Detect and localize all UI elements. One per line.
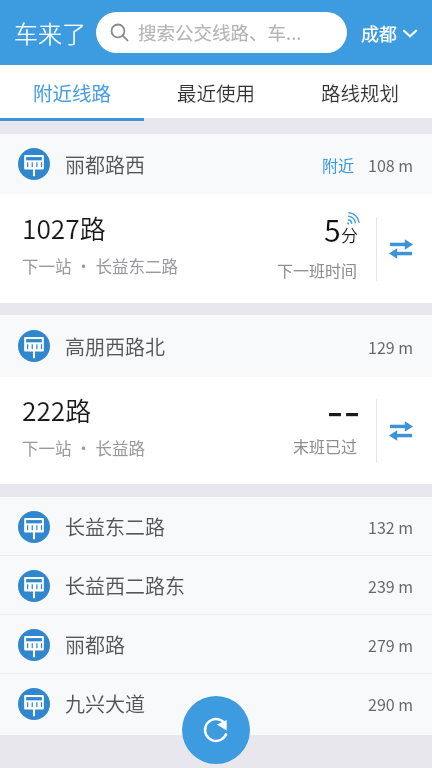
staticText: 222路: [22, 391, 92, 429]
button[interactable]: 九兴大道: [0, 674, 432, 733]
button[interactable]: 长益西二路东: [0, 556, 432, 615]
staticText: 丽都路: [65, 630, 125, 659]
staticText: 附近: [322, 153, 355, 176]
staticText: 车来了: [14, 15, 86, 50]
button[interactable]: 222路: [0, 377, 432, 484]
button[interactable]: 1027路: [0, 194, 432, 303]
button[interactable]: 搜索公交线路、车...: [96, 12, 347, 53]
staticText: 分: [341, 222, 358, 247]
button[interactable]: 高朋西路北: [0, 315, 432, 377]
staticText: 132 m: [368, 515, 414, 538]
button[interactable]: Switch direction: [386, 416, 416, 446]
staticText: 1027路: [22, 209, 106, 247]
staticText: 长益西二路东: [65, 571, 185, 600]
button[interactable]: 丽都路西: [0, 134, 432, 194]
button[interactable]: 成都: [361, 20, 418, 46]
button[interactable]: 最近使用: [144, 65, 288, 118]
button[interactable]: 路线规划: [288, 65, 432, 118]
staticText: 290 m: [368, 692, 414, 715]
button[interactable]: 长益东二路: [0, 497, 432, 556]
staticText: 丽都路西: [65, 150, 145, 179]
staticText: 最近使用: [177, 78, 256, 106]
staticText: 108 m: [368, 153, 414, 176]
staticText: 高朋西路北: [65, 332, 165, 361]
staticText: 5: [324, 207, 341, 250]
staticText: 路线规划: [321, 78, 400, 106]
staticText: 下一站 · 长益路: [22, 436, 145, 460]
staticText: 末班已过: [293, 434, 358, 457]
staticText: 129 m: [368, 335, 414, 358]
button[interactable]: Switch direction: [386, 234, 416, 264]
staticText: 成都: [361, 20, 397, 46]
staticText: 下一站 · 长益东二路: [22, 254, 178, 278]
staticText: 长益东二路: [65, 512, 165, 541]
button[interactable]: Refresh: [182, 696, 250, 764]
button[interactable]: 附近线路: [0, 65, 144, 118]
staticText: 下一班时间: [277, 258, 358, 281]
staticText: 附近线路: [33, 78, 112, 106]
staticText: 279 m: [368, 633, 414, 656]
button[interactable]: 丽都路: [0, 615, 432, 674]
staticText: 239 m: [368, 574, 414, 597]
staticText: 搜索公交线路、车...: [138, 19, 302, 46]
staticText: 九兴大道: [65, 689, 145, 718]
